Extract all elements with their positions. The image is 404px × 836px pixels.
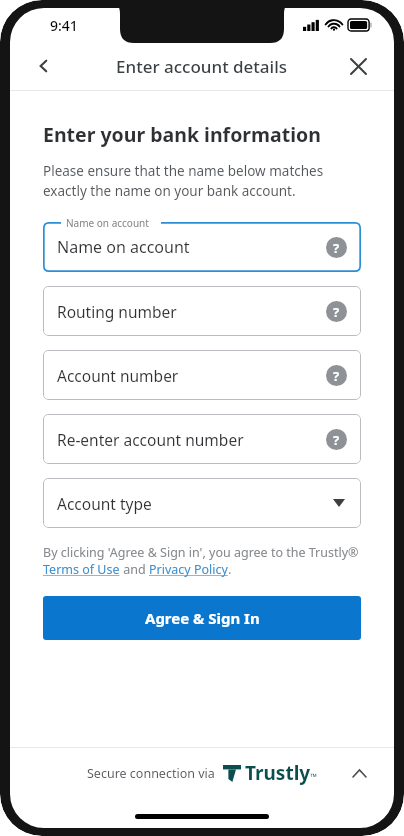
button[interactable]: Agree & Sign In (43, 596, 361, 640)
staticText: 9:41 (50, 16, 78, 35)
button[interactable]: Help (326, 429, 347, 450)
staticText: ? (333, 303, 340, 321)
staticText: Secure connection via (87, 765, 215, 782)
staticText: Name on account (66, 216, 149, 230)
staticText: ? (333, 367, 340, 385)
button[interactable]: Back (24, 46, 64, 86)
staticText: Re-enter account number (57, 429, 244, 450)
button[interactable]: Expand (342, 756, 376, 790)
staticText: Enter your bank information (43, 121, 321, 148)
staticText: Trustly™ (245, 760, 318, 786)
button[interactable]: Account number (43, 350, 361, 400)
button[interactable]: Help (326, 301, 347, 322)
button[interactable]: Close (338, 46, 378, 86)
button[interactable]: Privacy Policy (149, 561, 228, 578)
button[interactable]: Help (326, 365, 347, 386)
staticText: ? (333, 239, 340, 257)
staticText: and (120, 561, 149, 578)
staticText: . (228, 561, 232, 578)
staticText: Privacy Policy (149, 561, 228, 578)
button[interactable]: Account type (43, 478, 361, 528)
staticText: ? (333, 431, 340, 449)
button[interactable]: Re-enter account number (43, 414, 361, 464)
staticText: Routing number (57, 301, 177, 322)
staticText: Name on account (57, 236, 190, 258)
button[interactable]: Help (326, 237, 347, 258)
staticText: Enter account details (116, 55, 288, 78)
button[interactable]: Terms of Use (43, 561, 120, 578)
staticText: By clicking 'Agree & Sign in', you agree… (43, 544, 359, 561)
staticText: Please ensure that the name below matche… (43, 162, 361, 200)
staticText: Agree & Sign In (145, 608, 260, 628)
button[interactable]: Routing number (43, 286, 361, 336)
staticText: Account number (57, 365, 179, 386)
staticText: Terms of Use (43, 561, 120, 578)
staticText: Account type (57, 493, 152, 514)
